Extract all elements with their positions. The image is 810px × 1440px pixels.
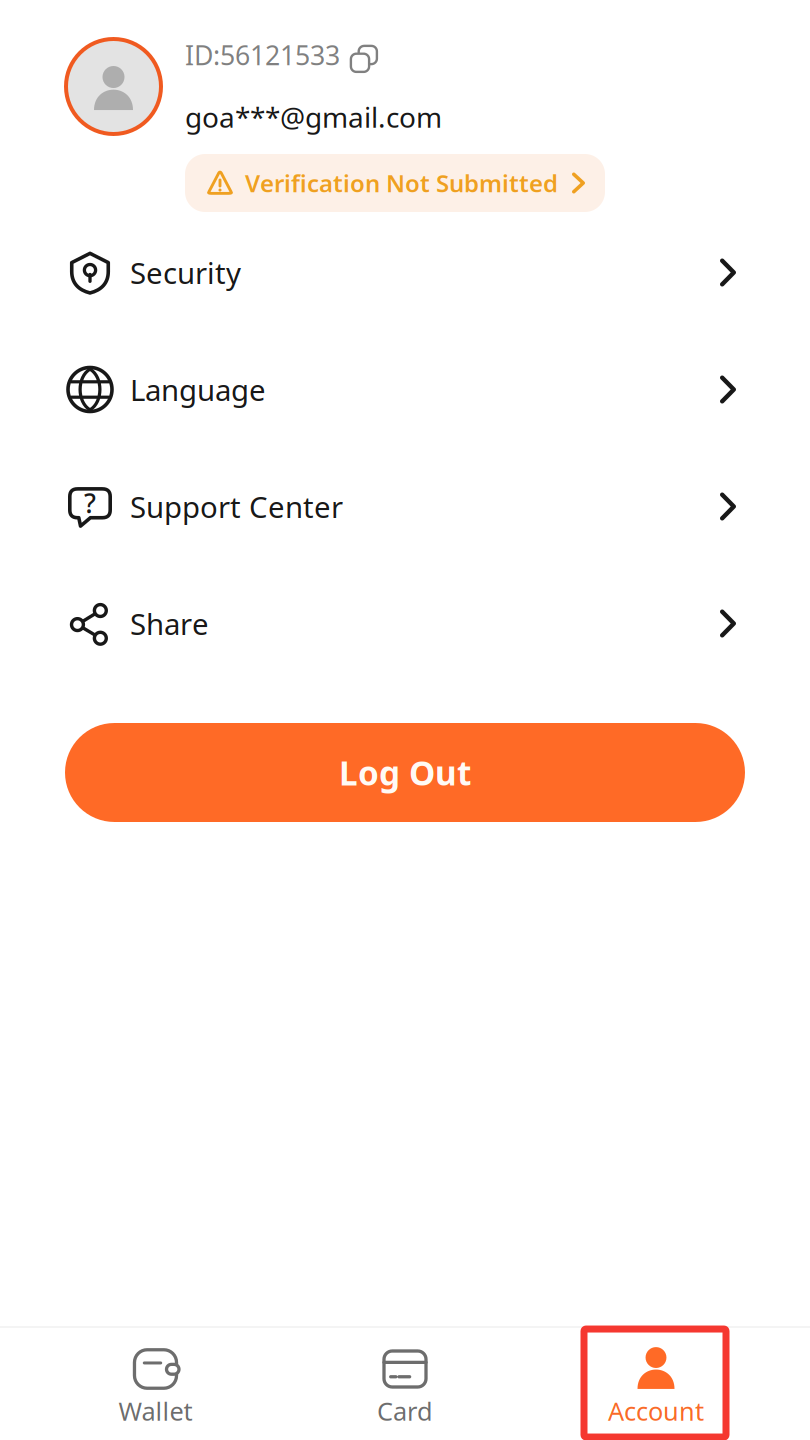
button[interactable]: Wallet bbox=[75, 1340, 235, 1438]
button[interactable]: ? bbox=[0, 448, 810, 565]
button[interactable]: Language bbox=[0, 331, 810, 448]
button[interactable]: Security bbox=[0, 214, 810, 331]
staticText: Security bbox=[130, 253, 241, 292]
staticText: Language bbox=[130, 370, 266, 409]
staticText: ID:56121533 bbox=[185, 37, 340, 73]
staticText: Account bbox=[608, 1394, 704, 1428]
button[interactable]: Card bbox=[325, 1340, 485, 1438]
staticText: Log Out bbox=[339, 750, 471, 795]
staticText: Share bbox=[130, 604, 209, 643]
staticText: Support Center bbox=[130, 487, 343, 526]
staticText: ? bbox=[84, 485, 96, 521]
staticText: goa***@gmail.com bbox=[185, 98, 442, 136]
staticText: Verification Not Submitted bbox=[245, 167, 558, 199]
button[interactable]: ID:56121533 bbox=[185, 33, 373, 77]
staticText: Wallet bbox=[118, 1394, 192, 1428]
button[interactable]: Account bbox=[576, 1340, 736, 1438]
button[interactable]: Verification Not Submitted bbox=[185, 154, 605, 212]
button[interactable]: Log Out bbox=[65, 723, 745, 822]
button[interactable]: Share bbox=[0, 565, 810, 682]
staticText: Card bbox=[377, 1394, 433, 1428]
